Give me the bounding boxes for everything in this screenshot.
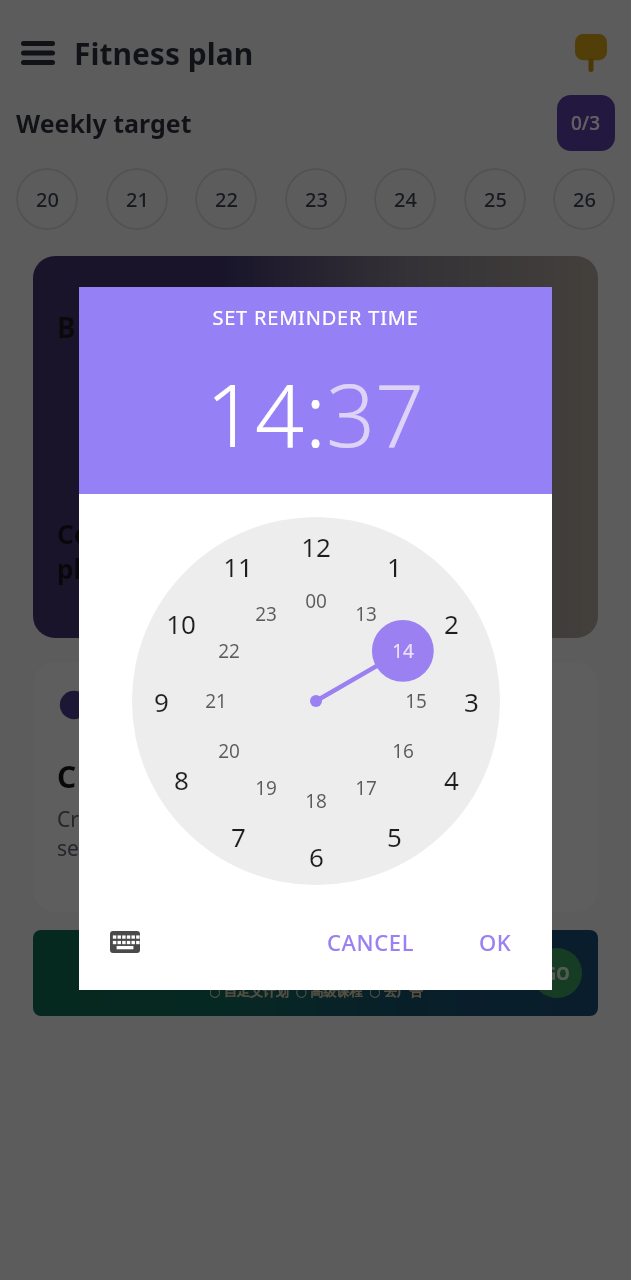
staticText: pl xyxy=(57,551,82,586)
staticText: 20 xyxy=(218,738,240,764)
staticText: 12 xyxy=(301,529,331,564)
button[interactable]: 0/3 xyxy=(557,95,615,151)
staticText: 11 xyxy=(223,549,253,584)
staticText: 17 xyxy=(355,775,377,801)
button[interactable]: 17 xyxy=(344,766,388,810)
button[interactable]: 37 xyxy=(326,355,425,472)
button[interactable]: 23 xyxy=(285,168,347,230)
staticText: 24 xyxy=(394,186,417,213)
staticText: 22 xyxy=(215,186,238,213)
button[interactable]: Switch to keyboard input xyxy=(99,916,151,968)
button[interactable]: 18 xyxy=(294,779,338,823)
staticText: 18 xyxy=(305,788,327,814)
staticText: 21 xyxy=(126,186,149,213)
button[interactable]: 22 xyxy=(195,168,257,230)
button[interactable]: 运动健身计划 健身指导 无广告打扰 xyxy=(33,930,598,1016)
staticText: 20 xyxy=(36,186,59,213)
button[interactable]: CANCEL xyxy=(317,919,425,965)
staticText: SET REMINDER TIME xyxy=(79,304,552,331)
button[interactable]: 23 xyxy=(244,592,288,636)
staticText: 9 xyxy=(154,684,169,719)
staticText: 5 xyxy=(387,819,402,854)
staticText: 15 xyxy=(405,688,427,714)
button[interactable]: 00 xyxy=(294,579,338,623)
staticText: 7 xyxy=(231,819,246,854)
button[interactable]: GO xyxy=(532,948,582,998)
button[interactable]: B xyxy=(33,256,598,638)
staticText: Fitness plan xyxy=(74,33,254,74)
staticText: 23 xyxy=(255,601,277,627)
button[interactable]: 19 xyxy=(244,766,288,810)
staticText: 23 xyxy=(305,186,328,213)
button[interactable]: 16 xyxy=(381,729,425,773)
button[interactable]: C xyxy=(33,662,598,912)
button[interactable]: 26 xyxy=(553,168,615,230)
staticText: Cr xyxy=(57,805,79,834)
button[interactable]: 14 xyxy=(381,629,425,673)
staticText: Weekly target xyxy=(16,106,192,140)
button[interactable]: Menu xyxy=(16,31,60,75)
button[interactable]: 13 xyxy=(344,592,388,636)
staticText: se xyxy=(57,834,79,863)
button[interactable]: 8 xyxy=(159,757,203,801)
staticText: GO xyxy=(544,962,570,985)
button[interactable]: 14 xyxy=(206,355,305,472)
staticText: 16 xyxy=(392,738,414,764)
button[interactable]: 21 xyxy=(194,679,238,723)
button[interactable]: 4 xyxy=(429,757,473,801)
staticText: 1 xyxy=(387,549,402,584)
staticText: Co xyxy=(57,516,90,551)
button[interactable]: 12 xyxy=(294,524,338,568)
button[interactable]: 11 xyxy=(216,544,260,588)
button[interactable]: 21 xyxy=(106,168,168,230)
staticText: 3 xyxy=(464,684,479,719)
button[interactable]: 6 xyxy=(294,834,338,878)
button[interactable]: OK xyxy=(469,919,522,965)
button[interactable]: 24 xyxy=(374,168,436,230)
button[interactable]: 22 xyxy=(207,629,251,673)
staticText: 14 xyxy=(392,638,414,664)
staticText: 13 xyxy=(355,601,377,627)
staticText: 19 xyxy=(255,775,277,801)
staticText: 22 xyxy=(218,638,240,664)
button[interactable]: 3 xyxy=(449,679,493,723)
staticText: C xyxy=(57,756,77,797)
staticText: 14 xyxy=(206,355,305,472)
staticText: 6 xyxy=(309,839,324,874)
staticText: CANCEL xyxy=(327,927,415,957)
staticText: 00 xyxy=(305,588,327,614)
button[interactable]: 20 xyxy=(16,168,78,230)
button[interactable]: 10 xyxy=(159,601,203,645)
button[interactable]: 1 xyxy=(372,544,416,588)
staticText: 21 xyxy=(205,688,227,714)
staticText: 37 xyxy=(326,355,425,472)
staticText: 8 xyxy=(174,762,189,797)
staticText: OK xyxy=(479,927,512,957)
button[interactable]: 20 xyxy=(207,729,251,773)
staticText: 2 xyxy=(444,606,459,641)
button[interactable]: 2 xyxy=(429,601,473,645)
button[interactable]: VIP xyxy=(567,29,615,77)
button[interactable]: 9 xyxy=(139,679,183,723)
button[interactable]: 5 xyxy=(372,814,416,858)
staticText: B xyxy=(57,308,76,346)
staticText: ○ 自定义计划 ○ 高级课程 ○ 去广告 xyxy=(209,982,423,1000)
button[interactable]: 7 xyxy=(216,814,260,858)
staticText: 4 xyxy=(444,762,459,797)
staticText: 运动健身计划 健身指导 无广告打扰 xyxy=(153,947,479,976)
staticText: 26 xyxy=(573,186,596,213)
staticText: 0/3 xyxy=(571,110,601,136)
button[interactable]: 15 xyxy=(394,679,438,723)
staticText: 25 xyxy=(484,186,507,213)
staticText: 10 xyxy=(166,606,196,641)
button[interactable]: 25 xyxy=(464,168,526,230)
staticText: : xyxy=(305,355,326,472)
